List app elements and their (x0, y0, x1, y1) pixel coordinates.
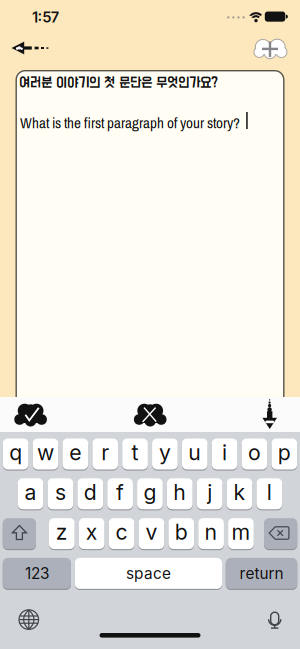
button[interactable]: z (49, 518, 75, 550)
button[interactable]: m (228, 518, 254, 550)
button[interactable]: r (92, 438, 118, 470)
button[interactable]: b (168, 518, 194, 550)
button[interactable]: n (198, 518, 224, 550)
staticText: u (188, 440, 201, 465)
button[interactable]: Save (0, 0, 300, 649)
staticText: j (207, 479, 212, 505)
staticText: b (175, 519, 188, 545)
button[interactable]: space (75, 557, 222, 589)
staticText: p (278, 440, 291, 465)
button[interactable]: o (242, 438, 267, 470)
staticText: 여러분 이야기의 첫 문단은 무엇인가요? (19, 75, 218, 90)
button[interactable]: return (226, 557, 297, 589)
button[interactable]: e (62, 438, 88, 470)
staticText: space (126, 564, 171, 583)
staticText: h (173, 479, 186, 505)
button[interactable]: q (3, 438, 28, 470)
button[interactable] (264, 518, 297, 550)
button[interactable]: x (79, 518, 104, 550)
staticText: f (116, 479, 124, 505)
button[interactable]: Discard (0, 0, 300, 649)
staticText: g (143, 479, 156, 505)
staticText: v (145, 519, 157, 545)
button[interactable]: u (182, 438, 208, 470)
button[interactable]: j (197, 478, 222, 510)
staticText: w (37, 440, 54, 465)
button[interactable]: c (109, 518, 134, 550)
button[interactable]: a (18, 478, 43, 510)
button[interactable]: h (167, 478, 193, 510)
staticText: z (56, 519, 68, 545)
button[interactable]: d (77, 478, 103, 510)
staticText: x (86, 519, 98, 545)
staticText: 1:57 (32, 8, 59, 26)
staticText: t (132, 440, 139, 465)
staticText: return (239, 564, 283, 583)
staticText: e (69, 440, 81, 465)
staticText: What is the first paragraph of your stor… (20, 112, 240, 133)
button[interactable]: f (107, 478, 133, 510)
button[interactable]: k (227, 478, 252, 510)
button[interactable]: w (33, 438, 58, 470)
staticText: q (9, 440, 22, 465)
button[interactable]: Back (6, 37, 54, 63)
button[interactable]: l (256, 478, 282, 510)
staticText: y (159, 440, 171, 465)
staticText: k (233, 479, 245, 505)
button[interactable]: Add (249, 36, 293, 66)
staticText: 123 (25, 564, 49, 583)
staticText: s (55, 479, 66, 505)
button[interactable]: Dismiss Keyboard (0, 0, 300, 649)
button[interactable]: v (139, 518, 164, 550)
button[interactable]: i (212, 438, 237, 470)
staticText: n (205, 519, 218, 545)
staticText: c (115, 519, 127, 545)
button[interactable]: t (122, 438, 148, 470)
button[interactable]: g (137, 478, 163, 510)
staticText: a (24, 479, 36, 505)
button[interactable]: p (271, 438, 297, 470)
staticText: r (101, 440, 109, 465)
button[interactable]: 123 (3, 557, 71, 589)
staticText: m (231, 519, 250, 545)
staticText: l (267, 479, 272, 505)
button[interactable] (3, 518, 36, 550)
staticText: d (84, 479, 97, 505)
staticText: o (248, 440, 261, 465)
button[interactable]: s (47, 478, 73, 510)
staticText: i (222, 440, 227, 465)
button[interactable]: y (152, 438, 178, 470)
